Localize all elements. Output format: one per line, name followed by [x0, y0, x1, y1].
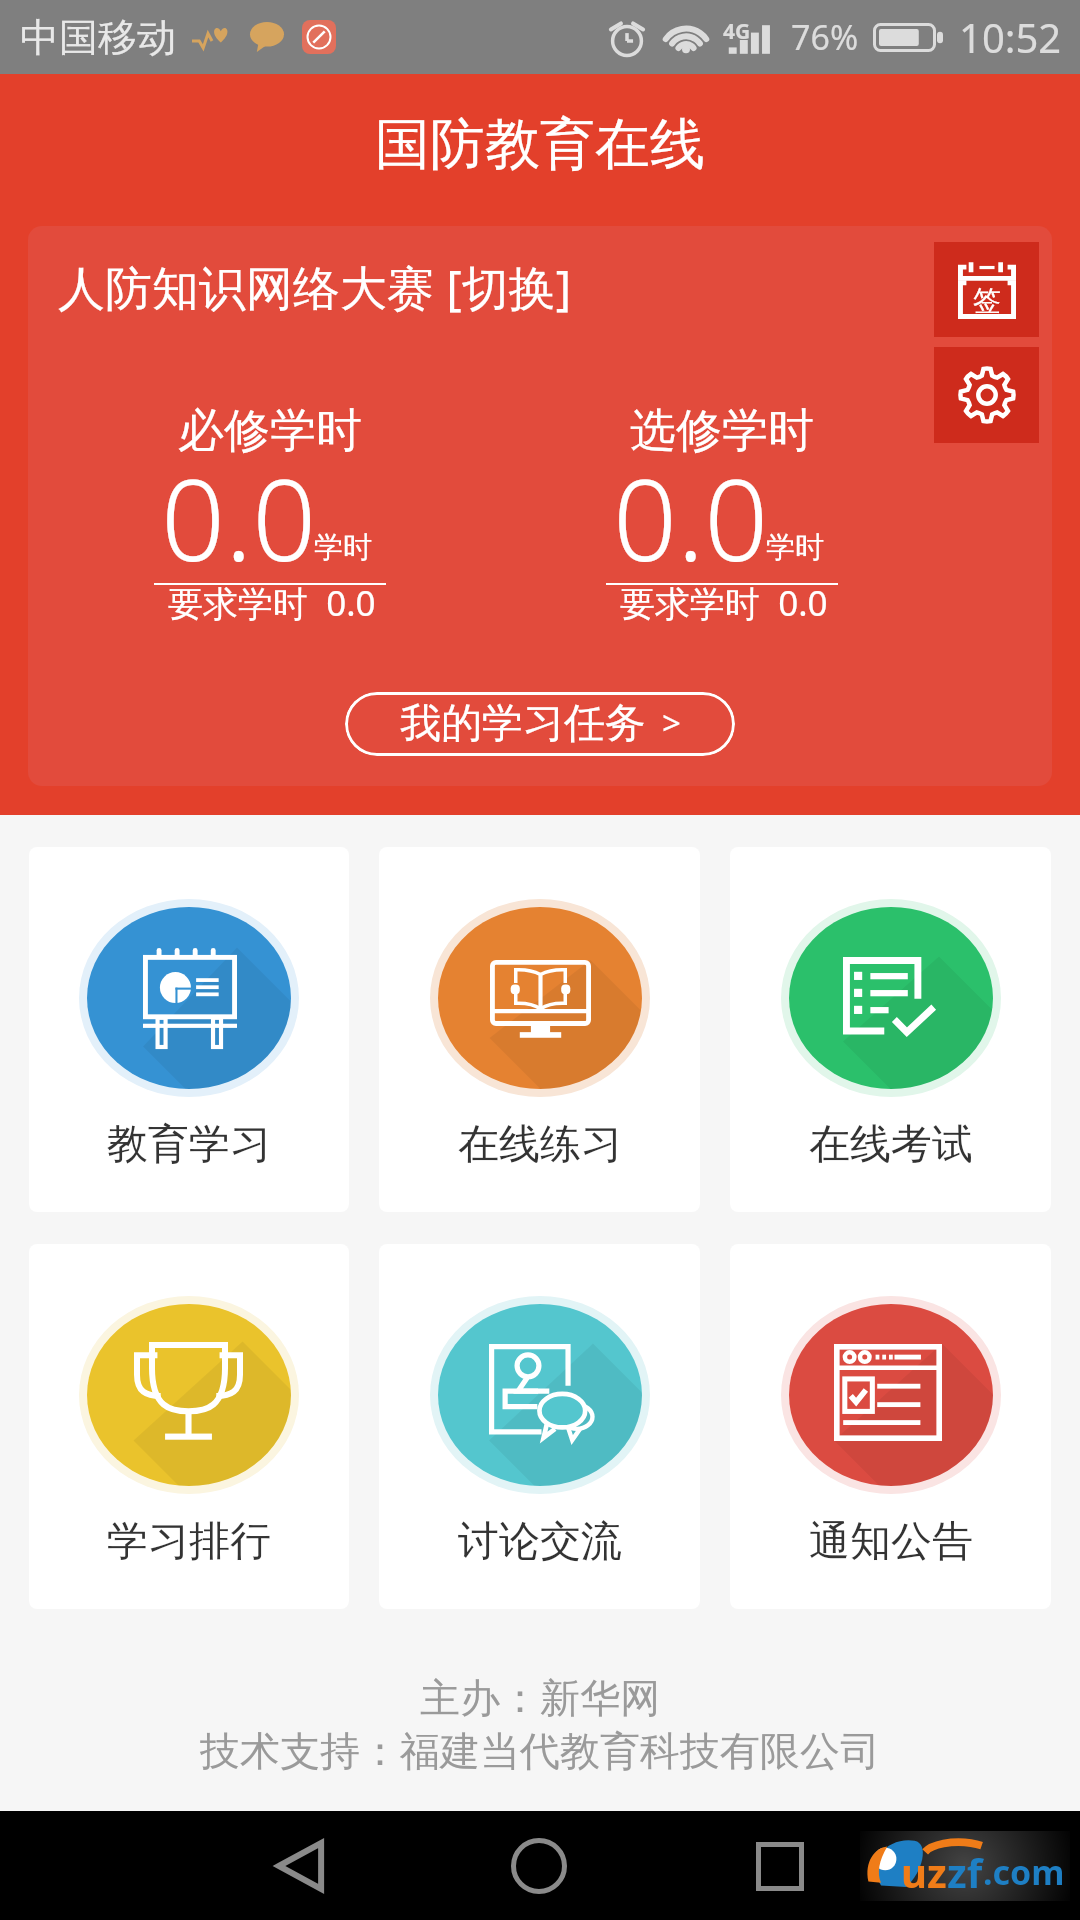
staticText: 通知公告	[809, 1516, 973, 1568]
staticText: 4G	[723, 17, 751, 46]
staticText: 教育学习	[107, 1119, 271, 1171]
staticText: 必修学时	[178, 402, 362, 460]
staticText: 我的学习任务	[400, 698, 646, 750]
staticText: 讨论交流	[458, 1516, 622, 1568]
staticText: 10:52	[959, 10, 1062, 64]
staticText: 0.0	[161, 441, 317, 594]
button[interactable]: 设置	[934, 347, 1039, 443]
staticText: 国防教育在线	[375, 110, 705, 179]
staticText: 技术支持：福建当代教育科技有限公司	[200, 1726, 880, 1776]
staticText: 中国移动	[20, 13, 176, 62]
staticText: 要求学时 0.0	[620, 579, 828, 627]
button[interactable]: 在线考试	[730, 847, 1051, 1212]
button[interactable]: 通知公告	[730, 1244, 1051, 1609]
staticText: z	[927, 1845, 947, 1899]
staticText: 选修学时	[630, 402, 814, 460]
staticText: >	[662, 700, 681, 745]
staticText: zf	[947, 1845, 983, 1899]
staticText: 人防知识网络大赛 [切换]	[58, 255, 572, 319]
button[interactable]: 签到	[934, 242, 1039, 337]
staticText: .com	[983, 1849, 1065, 1895]
button[interactable]: 我的学习任务	[345, 692, 735, 756]
button[interactable]: 在线练习	[379, 847, 700, 1212]
staticText: 在线考试	[809, 1119, 973, 1171]
staticText: u	[901, 1845, 927, 1899]
staticText: 签	[973, 283, 1001, 318]
staticText: 在线练习	[458, 1119, 622, 1171]
staticText: 0.0	[613, 441, 769, 594]
button[interactable]: 主页	[479, 1816, 599, 1916]
button[interactable]: 最近任务	[720, 1816, 840, 1916]
button[interactable]: 教育学习	[29, 847, 349, 1212]
staticText: 学时	[314, 529, 372, 566]
staticText: 76%	[791, 14, 859, 60]
button[interactable]: 学习排行	[29, 1244, 349, 1609]
button[interactable]: 返回	[240, 1816, 360, 1916]
staticText: 要求学时 0.0	[168, 579, 376, 627]
button[interactable]: 讨论交流	[379, 1244, 700, 1609]
staticText: 主办：新华网	[420, 1673, 660, 1723]
staticText: 学时	[766, 529, 824, 566]
staticText: 学习排行	[107, 1516, 271, 1568]
